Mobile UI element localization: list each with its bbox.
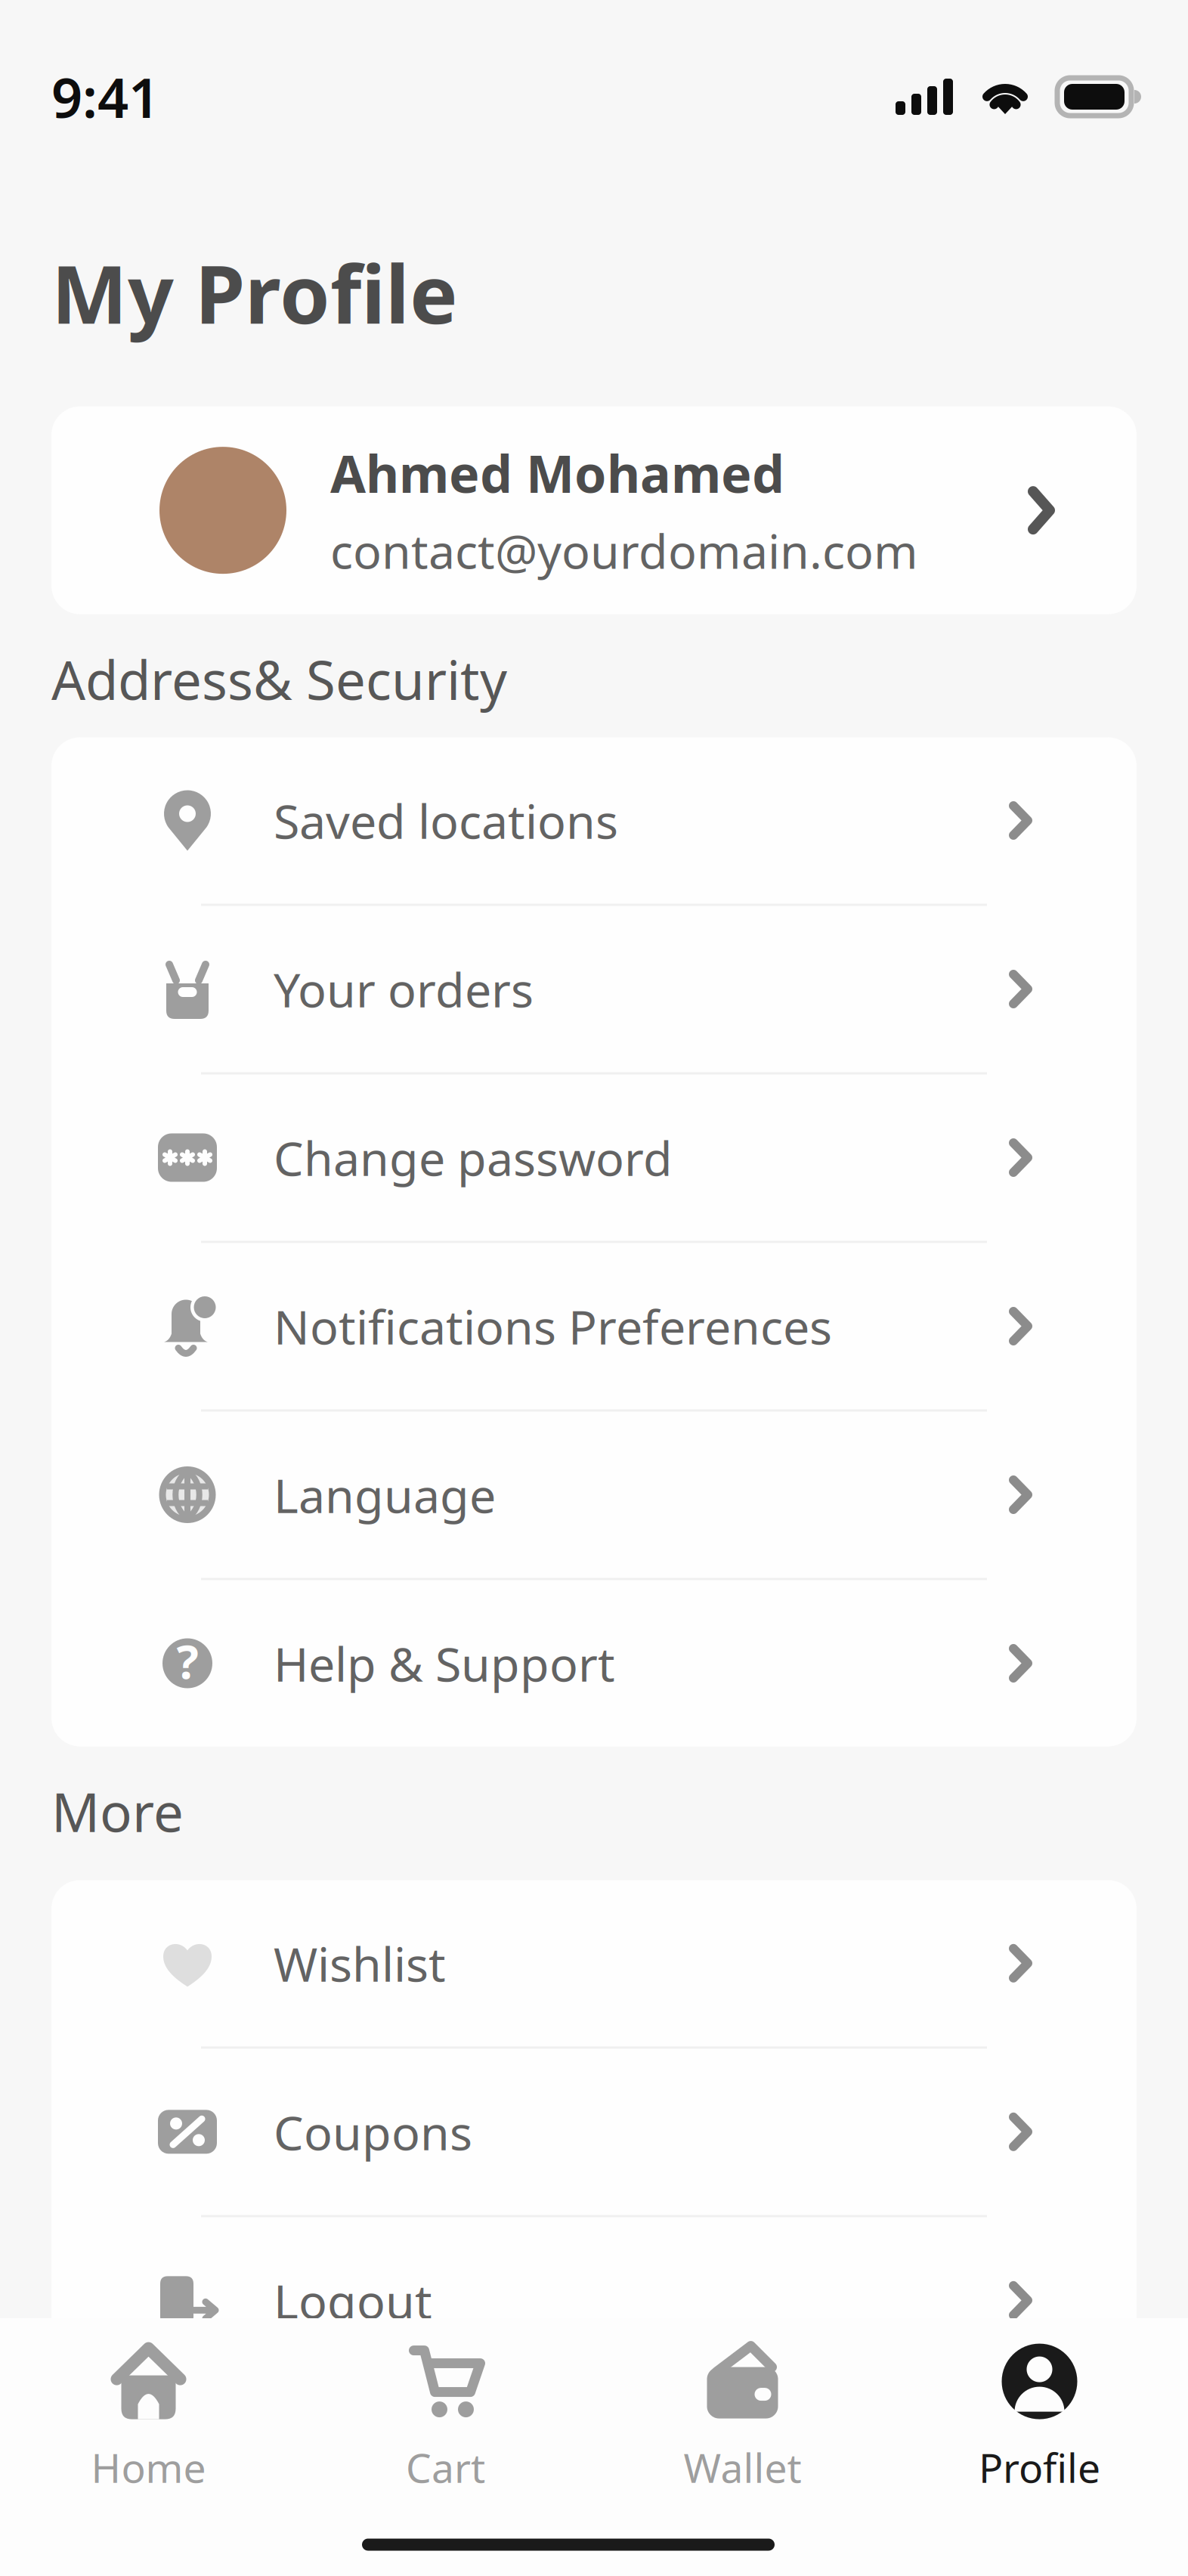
button[interactable]: Saved locations: [51, 737, 1137, 904]
staticText: Coupons: [274, 2100, 472, 2163]
staticText: Change password: [274, 1126, 673, 1189]
button[interactable]: Ahmed Mohamed: [51, 406, 1137, 614]
button[interactable]: Your orders: [51, 906, 1137, 1072]
button[interactable]: ?: [51, 1580, 1137, 1746]
staticText: Profile: [979, 2440, 1100, 2494]
button[interactable]: Wishlist: [51, 1880, 1137, 2046]
button[interactable]: Language: [51, 1412, 1137, 1578]
button[interactable]: Wallet: [594, 2318, 891, 2507]
staticText: Your orders: [274, 958, 534, 1020]
staticText: Help & Support: [274, 1632, 615, 1695]
staticText: Address& Security: [51, 644, 507, 715]
staticText: Wishlist: [274, 1932, 446, 1995]
staticText: Cart: [406, 2440, 485, 2494]
button[interactable]: Notifications Preferences: [51, 1243, 1137, 1409]
button[interactable]: Coupons: [51, 2049, 1137, 2215]
button[interactable]: Change password: [51, 1074, 1137, 1241]
staticText: 9:41: [51, 61, 159, 133]
staticText: Logout: [274, 2269, 432, 2332]
staticText: Home: [91, 2440, 206, 2494]
button[interactable]: Cart: [297, 2318, 594, 2507]
staticText: Notifications Preferences: [274, 1295, 832, 1358]
staticText: contact@yourdomain.com: [330, 519, 918, 582]
staticText: Language: [274, 1463, 496, 1526]
staticText: More: [51, 1776, 184, 1847]
staticText: Wallet: [684, 2440, 801, 2494]
staticText: My Profile: [51, 239, 458, 346]
staticText: Saved locations: [274, 789, 618, 852]
staticText: Ahmed Mohamed: [330, 439, 784, 507]
button[interactable]: Logout: [51, 2217, 1137, 2383]
button[interactable]: Home: [0, 2318, 297, 2507]
button[interactable]: Profile: [891, 2318, 1188, 2507]
staticText: ?: [176, 1630, 198, 1692]
